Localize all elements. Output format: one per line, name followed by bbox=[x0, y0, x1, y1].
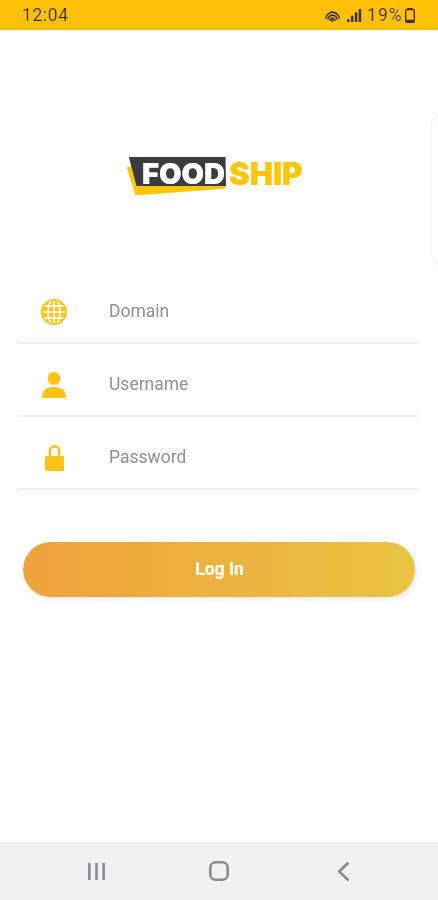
button[interactable]: Log In bbox=[23, 542, 415, 597]
staticText: 12:04 bbox=[22, 5, 69, 26]
button[interactable]: Username bbox=[0, 344, 438, 417]
staticText: Username bbox=[109, 374, 189, 395]
staticText: Password bbox=[109, 447, 187, 468]
staticText: Log In bbox=[195, 559, 244, 580]
staticText: Domain bbox=[109, 301, 170, 322]
button[interactable]: Back bbox=[315, 843, 371, 899]
staticText: SHIP bbox=[229, 155, 303, 193]
staticText: FOOD bbox=[142, 156, 225, 191]
button[interactable]: Domain bbox=[0, 271, 438, 344]
button[interactable]: Password bbox=[0, 417, 438, 490]
staticText: 19% bbox=[367, 5, 403, 26]
button[interactable]: Recent apps bbox=[68, 843, 124, 899]
button[interactable]: Home bbox=[191, 843, 247, 899]
